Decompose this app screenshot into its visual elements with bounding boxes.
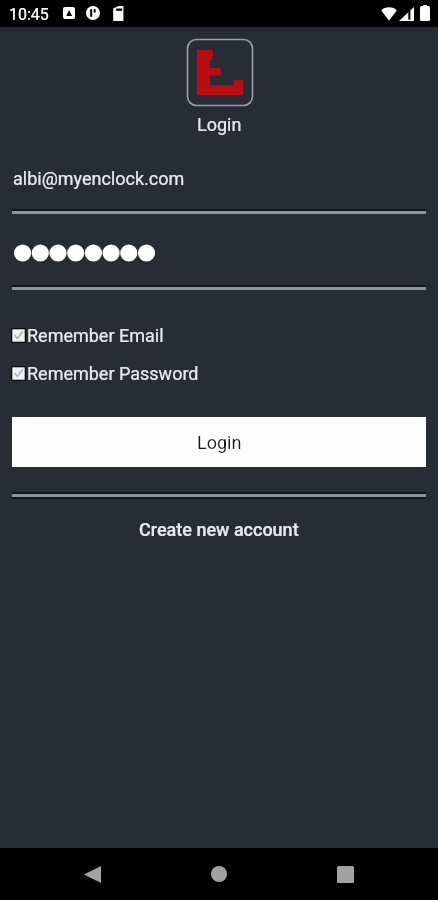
button[interactable]: Recents <box>321 850 369 898</box>
staticText: Login <box>197 432 242 453</box>
staticText: albi@myenclock.com <box>13 168 185 189</box>
staticText: Login <box>197 114 242 135</box>
button[interactable]: Home <box>195 850 243 898</box>
button[interactable]: Back <box>68 850 116 898</box>
button[interactable]: Remember Password <box>10 363 199 384</box>
staticText: Remember Password <box>27 363 199 384</box>
button[interactable]: Login <box>12 417 426 467</box>
button[interactable]: Create new account <box>139 519 299 540</box>
staticText: 10:45 <box>9 5 49 24</box>
button[interactable]: Remember Email <box>10 325 164 346</box>
staticText: Create new account <box>139 519 299 540</box>
staticText: Remember Email <box>27 325 164 346</box>
